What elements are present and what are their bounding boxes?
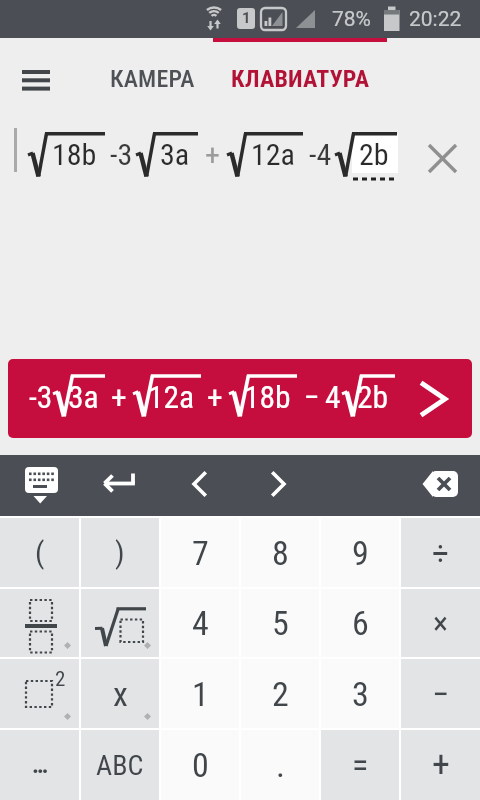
- staticText: 0: [192, 745, 209, 785]
- staticText: 3: [352, 674, 369, 714]
- button[interactable]: +: [401, 730, 480, 800]
- button[interactable]: .: [241, 730, 319, 800]
- staticText: ÷: [432, 533, 449, 573]
- button[interactable]: [81, 589, 159, 657]
- staticText: 12a: [251, 137, 295, 172]
- staticText: (: [35, 535, 45, 570]
- button[interactable]: [410, 457, 470, 514]
- button[interactable]: (: [0, 518, 79, 587]
- staticText: +: [207, 379, 223, 416]
- staticText: 7: [192, 533, 209, 573]
- button[interactable]: 0: [161, 730, 239, 800]
- button[interactable]: [12, 57, 60, 101]
- button[interactable]: 2: [0, 659, 79, 728]
- button[interactable]: [0, 589, 79, 657]
- button[interactable]: 3: [321, 659, 399, 728]
- staticText: 2b: [357, 379, 389, 416]
- staticText: …: [32, 751, 48, 779]
- staticText: 8: [272, 533, 289, 573]
- staticText: .: [276, 745, 285, 785]
- staticText: 3a: [160, 137, 190, 172]
- staticText: 1: [242, 9, 251, 27]
- staticText: =: [352, 745, 369, 785]
- button[interactable]: 5: [241, 589, 319, 657]
- staticText: +: [432, 744, 450, 786]
- staticText: 18b: [244, 379, 291, 416]
- button[interactable]: 4: [161, 589, 239, 657]
- button[interactable]: ABC: [81, 730, 159, 800]
- staticText: -3: [29, 379, 53, 416]
- button[interactable]: ÷: [401, 518, 480, 587]
- button[interactable]: [18, 457, 76, 514]
- button[interactable]: 7: [161, 518, 239, 587]
- button[interactable]: 9: [321, 518, 399, 587]
- button[interactable]: [95, 457, 150, 514]
- staticText: +: [111, 379, 127, 416]
- staticText: 6: [352, 603, 369, 643]
- staticText: +: [205, 137, 220, 172]
- button[interactable]: [175, 457, 225, 514]
- staticText: 4: [325, 379, 341, 416]
- button[interactable]: 8: [241, 518, 319, 587]
- button[interactable]: −: [401, 659, 480, 728]
- button[interactable]: [255, 457, 305, 514]
- button[interactable]: ×: [401, 589, 480, 657]
- staticText: −: [432, 674, 449, 714]
- button[interactable]: ): [81, 518, 159, 587]
- staticText: 2: [55, 667, 66, 692]
- staticText: 3a: [68, 379, 99, 416]
- button[interactable]: 1: [161, 659, 239, 728]
- staticText: 78%: [332, 7, 371, 32]
- button[interactable]: 2: [241, 659, 319, 728]
- staticText: 9: [352, 533, 369, 573]
- staticText: 18b: [52, 137, 97, 172]
- button[interactable]: КАМЕРА: [95, 56, 210, 102]
- staticText: КАМЕРА: [110, 65, 195, 93]
- staticText: 5: [272, 603, 289, 643]
- staticText: 1: [192, 674, 209, 714]
- staticText: -4: [309, 137, 332, 172]
- button[interactable]: КЛАВИАТУРА: [218, 56, 382, 102]
- staticText: −: [304, 379, 320, 416]
- staticText: -3: [110, 137, 133, 172]
- staticText: КЛАВИАТУРА: [231, 65, 370, 93]
- staticText: ): [115, 535, 125, 570]
- staticText: 2b: [359, 137, 389, 172]
- staticText: 2: [272, 674, 289, 714]
- button[interactable]: -3: [8, 359, 472, 438]
- button[interactable]: =: [321, 730, 399, 800]
- staticText: 4: [192, 603, 209, 643]
- staticText: ×: [433, 604, 449, 642]
- staticText: x: [113, 674, 128, 714]
- button[interactable]: 6: [321, 589, 399, 657]
- button[interactable]: [420, 136, 464, 180]
- button[interactable]: x: [81, 659, 159, 728]
- staticText: ABC: [96, 749, 144, 782]
- staticText: 12a: [148, 379, 195, 416]
- button[interactable]: …: [0, 730, 79, 800]
- staticText: 20:22: [409, 7, 462, 32]
